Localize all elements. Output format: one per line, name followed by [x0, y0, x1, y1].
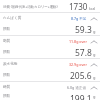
staticText: 199.1 — [70, 93, 92, 100]
button[interactable]: 脂質 — [0, 36, 100, 47]
staticText: 32.9g over — [69, 62, 87, 67]
staticText: 11.8g over — [69, 39, 87, 44]
button[interactable]: 炭水化物 — [0, 59, 100, 70]
staticText: 摂取 — [3, 73, 11, 78]
staticText: kcal — [89, 6, 96, 11]
staticText: 消費 (基礎代謝+活動カロリー+運動) — [3, 4, 58, 9]
other: Collapse — [89, 38, 98, 46]
button[interactable]: 消費 (基礎代謝+活動カロリー+運動) — [0, 0, 100, 12]
staticText: 炭水化物 — [3, 62, 18, 67]
staticText: 脂質 — [3, 39, 11, 44]
staticText: たんぱく質 — [3, 16, 22, 21]
staticText: 205.6 — [70, 70, 92, 81]
other: Collapse — [89, 61, 98, 69]
staticText: 摂取 — [3, 27, 11, 32]
button[interactable]: 摂取 — [0, 47, 100, 58]
staticText: g — [93, 75, 96, 80]
staticText: 59.3 — [75, 24, 92, 35]
button[interactable]: 摂取 — [0, 93, 100, 100]
button[interactable]: 摂取 — [0, 70, 100, 81]
staticText: 6.0g 適正値 — [67, 85, 87, 90]
button[interactable]: たんぱく質 — [0, 13, 100, 24]
button[interactable]: 糖質 — [0, 82, 100, 93]
staticText: 摂取 — [3, 50, 11, 55]
staticText: 8.7g 不足 — [71, 16, 87, 21]
staticText: 摂取 — [3, 94, 11, 99]
staticText: g — [93, 29, 96, 34]
other: Collapse — [89, 15, 98, 23]
staticText: 糖質 — [3, 85, 11, 90]
staticText: 57.8 — [75, 47, 92, 58]
other: Collapse — [89, 84, 98, 92]
staticText: g — [93, 52, 96, 57]
staticText: g — [93, 94, 96, 99]
button[interactable]: 摂取 — [0, 24, 100, 35]
staticText: 1730 — [69, 1, 88, 12]
